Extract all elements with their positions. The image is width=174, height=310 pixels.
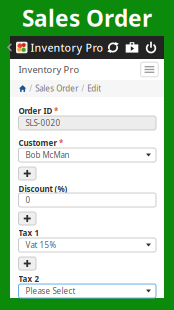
staticText: Edit bbox=[87, 83, 101, 94]
staticText: Tax 1 bbox=[18, 228, 39, 238]
staticText: * bbox=[59, 138, 63, 148]
staticText: Tax 2 bbox=[18, 274, 39, 284]
staticText: Inventory Pro bbox=[18, 63, 79, 76]
button[interactable]: Inventory Pro bbox=[4, 36, 103, 59]
staticText: Vat 15% bbox=[25, 240, 56, 250]
staticText: SLS-0020 bbox=[25, 118, 60, 128]
staticText: Inventory Pro bbox=[30, 40, 103, 55]
button[interactable]: Power bbox=[141, 36, 160, 59]
staticText: Bob McMan bbox=[25, 150, 69, 160]
button[interactable]: Menu bbox=[141, 62, 158, 77]
staticText: Discount (%) bbox=[18, 184, 67, 194]
staticText: Please Select bbox=[25, 286, 75, 296]
staticText: / bbox=[29, 83, 32, 94]
button[interactable]: Add bbox=[18, 257, 36, 270]
button[interactable]: Camera bbox=[122, 36, 141, 59]
button[interactable]: Refresh bbox=[103, 36, 122, 59]
staticText: Sales Order bbox=[22, 3, 152, 33]
staticText: * bbox=[54, 106, 58, 116]
button[interactable]: Add bbox=[18, 212, 36, 225]
staticText: Customer bbox=[18, 138, 57, 148]
staticText: / bbox=[81, 83, 84, 94]
button[interactable]: Add bbox=[18, 167, 36, 180]
staticText: Order ID bbox=[18, 106, 52, 116]
button[interactable]: Sales Order bbox=[35, 83, 78, 94]
staticText: 0 bbox=[25, 195, 30, 205]
staticText: Sales Order bbox=[35, 83, 78, 94]
